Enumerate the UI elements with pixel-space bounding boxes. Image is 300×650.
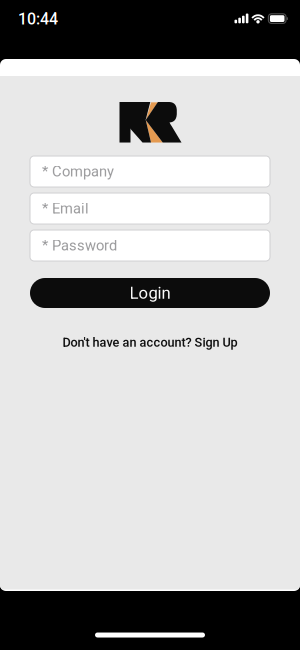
staticText: Don't have an account? bbox=[62, 335, 191, 350]
staticText: Login bbox=[129, 283, 170, 303]
button[interactable]: * Password bbox=[30, 230, 270, 261]
button[interactable]: Sign Up bbox=[194, 335, 237, 350]
button[interactable]: Login bbox=[30, 278, 270, 308]
button[interactable]: * Email bbox=[30, 193, 270, 224]
staticText: * Email bbox=[42, 200, 89, 217]
button[interactable]: * Company bbox=[30, 156, 270, 187]
staticText: * Password bbox=[42, 237, 117, 254]
staticText: Sign Up bbox=[194, 335, 237, 350]
staticText: * Company bbox=[42, 163, 114, 180]
staticText: 10:44 bbox=[18, 10, 58, 28]
